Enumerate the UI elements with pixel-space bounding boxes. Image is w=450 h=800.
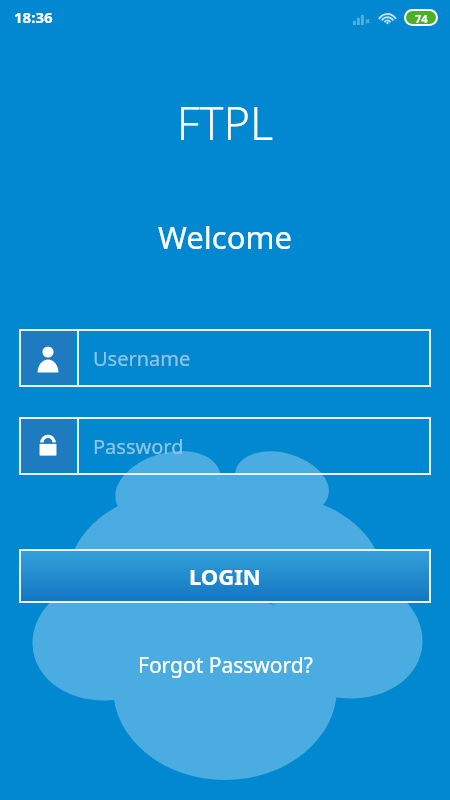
- button[interactable]: Password: [19, 417, 431, 475]
- staticText: 18:36: [14, 7, 53, 27]
- staticText: FTPL: [0, 92, 450, 153]
- staticText: Forgot Password?: [138, 651, 313, 680]
- button[interactable]: LOGIN: [21, 551, 429, 601]
- button[interactable]: Forgot Password?: [0, 647, 450, 684]
- button[interactable]: Username: [19, 329, 431, 387]
- staticText: Password: [93, 433, 184, 460]
- staticText: LOGIN: [189, 561, 261, 591]
- staticText: 74: [415, 11, 428, 24]
- staticText: Username: [93, 345, 191, 372]
- staticText: Welcome: [0, 216, 450, 258]
